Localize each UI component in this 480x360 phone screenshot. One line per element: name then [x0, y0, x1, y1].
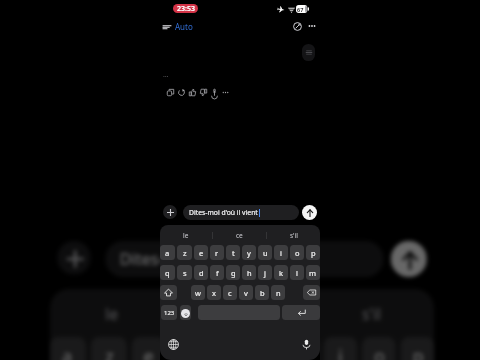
button[interactable]: Regenerate	[176, 87, 187, 98]
button[interactable]: Send	[391, 241, 427, 277]
staticText: i	[338, 344, 343, 360]
staticText: r	[215, 248, 219, 258]
button[interactable]: b	[255, 285, 269, 300]
button[interactable]: p	[306, 245, 320, 260]
staticText: z	[183, 248, 187, 258]
button[interactable]: h	[242, 265, 256, 280]
staticText: o	[295, 248, 300, 258]
staticText: z	[105, 344, 115, 360]
button[interactable]: m	[306, 265, 320, 280]
button[interactable]: t	[226, 245, 240, 260]
button[interactable]: Bad response	[198, 87, 209, 98]
button[interactable]: w	[191, 285, 205, 300]
staticText: e	[199, 248, 204, 258]
staticText: le	[183, 231, 189, 240]
button[interactable]: Shift	[160, 285, 177, 300]
staticText: y	[247, 248, 251, 258]
button[interactable]: a	[160, 245, 175, 260]
button[interactable]: f	[210, 265, 224, 280]
button[interactable]: u	[285, 337, 319, 360]
button[interactable]: r	[170, 337, 204, 360]
button[interactable]: z	[91, 337, 127, 360]
staticText: x	[212, 288, 216, 298]
staticText: h	[247, 268, 252, 278]
button[interactable]: g	[226, 265, 240, 280]
button[interactable]: Auto	[160, 19, 193, 34]
staticText: a	[62, 344, 74, 360]
button[interactable]: u	[258, 245, 272, 260]
button[interactable]: 123	[161, 305, 177, 320]
button[interactable]: ce	[213, 228, 266, 242]
button[interactable]: Add attachment	[57, 241, 91, 275]
button[interactable]: Copy	[165, 87, 176, 98]
staticText: k	[279, 268, 284, 278]
staticText: o	[374, 344, 386, 360]
button[interactable]: Change language	[165, 336, 181, 352]
button[interactable]: x	[207, 285, 221, 300]
button[interactable]: c	[223, 285, 237, 300]
staticText: d	[199, 268, 204, 278]
staticText: v	[244, 288, 248, 298]
staticText: u	[263, 248, 268, 258]
button[interactable]: Backspace	[303, 285, 320, 300]
button[interactable]: ce	[177, 296, 304, 330]
button[interactable]: r	[210, 245, 224, 260]
button[interactable]: More	[220, 87, 231, 98]
button[interactable]: j	[258, 265, 272, 280]
staticText: b	[260, 288, 265, 298]
staticText: Auto	[175, 21, 193, 32]
button[interactable]: Good response	[187, 87, 198, 98]
staticText: l	[296, 268, 298, 278]
button[interactable]: Voice input	[298, 336, 314, 352]
button[interactable]: z	[177, 245, 192, 260]
staticText: 67	[297, 6, 304, 13]
staticText: 23:53	[177, 4, 195, 13]
button[interactable]: le	[50, 296, 175, 330]
staticText: q	[165, 268, 170, 278]
button[interactable]: p	[400, 337, 434, 360]
staticText: s'il	[362, 303, 381, 325]
button[interactable]: n	[271, 285, 285, 300]
button[interactable]: i	[324, 337, 357, 360]
button[interactable]: o	[290, 245, 304, 260]
button[interactable]: Send	[302, 205, 317, 220]
button[interactable]: y	[242, 245, 256, 260]
button[interactable]: s'il	[307, 296, 434, 330]
button[interactable]: k	[274, 265, 288, 280]
button[interactable]: More options	[306, 20, 318, 32]
button[interactable]: q	[160, 265, 175, 280]
staticText: a	[165, 248, 170, 258]
button[interactable]: l	[290, 265, 304, 280]
button[interactable]: New chat	[291, 20, 303, 32]
button[interactable]: i	[274, 245, 288, 260]
button[interactable]: Emoji	[180, 305, 191, 320]
staticText: i	[280, 248, 282, 258]
button[interactable]: s'il	[267, 228, 320, 242]
staticText: p	[311, 248, 316, 258]
button[interactable]: a	[50, 337, 86, 360]
button[interactable]: e	[194, 245, 208, 260]
button[interactable]: e	[132, 337, 165, 360]
button[interactable]: Share	[209, 87, 220, 98]
button[interactable]: Dites-moi d'où il vient	[105, 241, 384, 277]
button[interactable]: Enter	[282, 305, 320, 320]
button[interactable]: Adjust	[302, 44, 315, 61]
staticText: Dites-moi d'où il vient	[189, 208, 258, 217]
button[interactable]: Add attachment	[163, 205, 177, 219]
button[interactable]: d	[194, 265, 208, 280]
staticText: s	[183, 268, 187, 278]
button[interactable]: s	[177, 265, 192, 280]
staticText: ce	[232, 303, 249, 325]
button[interactable]: Dites-moi d'où il vient	[183, 205, 299, 220]
staticText: g	[231, 268, 236, 278]
button[interactable]: le	[160, 228, 212, 242]
button[interactable]: o	[362, 337, 396, 360]
staticText: le	[105, 303, 120, 325]
button[interactable]: v	[239, 285, 253, 300]
